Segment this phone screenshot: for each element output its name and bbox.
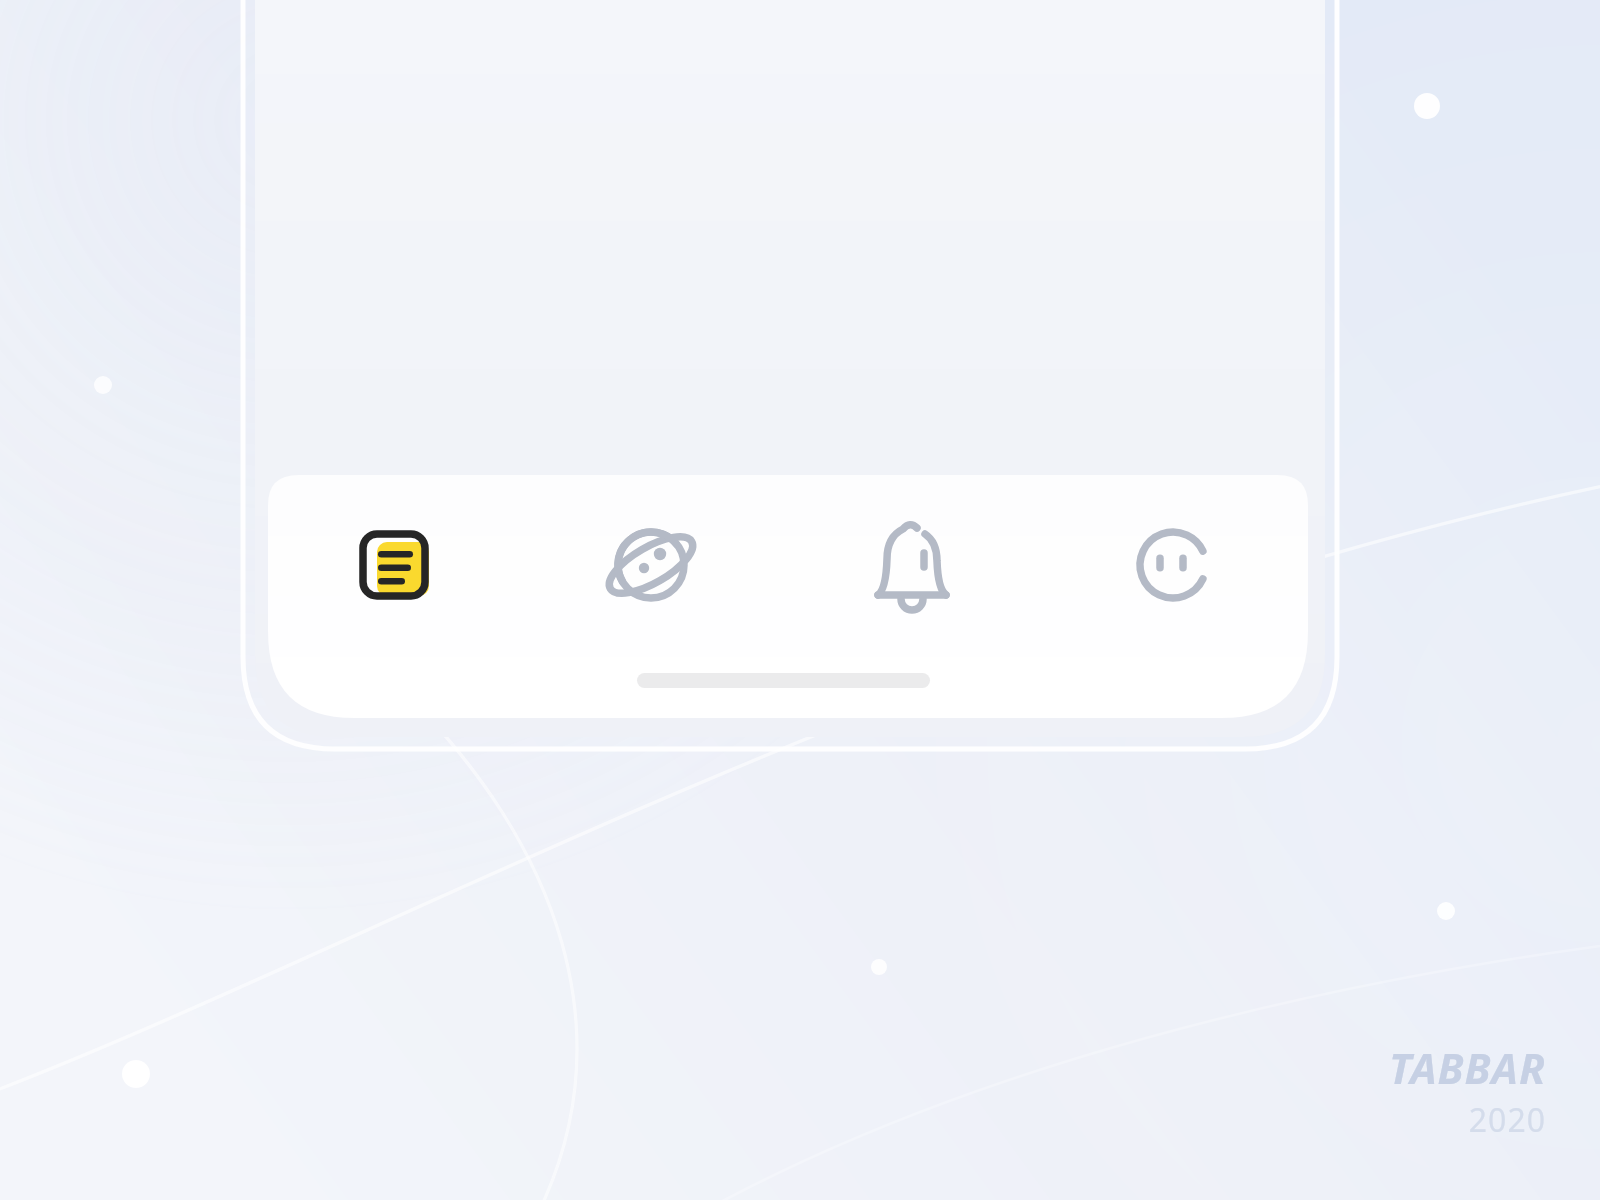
button[interactable]: Explore	[591, 505, 711, 625]
button[interactable]: Notifications	[852, 505, 972, 625]
staticText: TABBAR	[1388, 1039, 1546, 1096]
button[interactable]: Profile	[1113, 505, 1233, 625]
button[interactable]: Notes	[334, 505, 454, 625]
staticText: 2020	[1468, 1098, 1546, 1142]
